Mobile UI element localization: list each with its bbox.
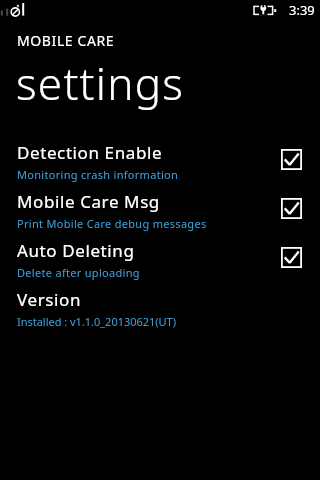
staticText: Auto Deleting	[17, 239, 135, 262]
staticText: Delete after uploading	[17, 265, 140, 280]
staticText: MOBILE CARE	[17, 31, 115, 50]
button[interactable]: Auto Deleting checkbox	[281, 247, 302, 268]
staticText: Version	[17, 288, 81, 311]
button[interactable]: Detection Enable	[0, 141, 320, 190]
button[interactable]: Detection Enable checkbox	[281, 149, 302, 170]
staticText: Mobile Care Msg	[17, 190, 160, 213]
staticText: Monitoring crash information	[17, 167, 179, 182]
staticText: Detection Enable	[17, 141, 163, 164]
button[interactable]: Mobile Care Msg checkbox	[281, 198, 302, 219]
button[interactable]: Mobile Care Msg	[0, 190, 320, 239]
staticText: settings	[16, 53, 185, 113]
other: No network signal	[0, 2, 30, 18]
staticText: Installed : v1.1.0_20130621(UT)	[17, 314, 176, 329]
button[interactable]: Auto Deleting	[0, 239, 320, 288]
staticText: 3:39	[289, 1, 315, 19]
staticText: Print Mobile Care debug messages	[17, 216, 207, 231]
other: Battery charging	[254, 0, 278, 20]
button[interactable]: Version	[0, 288, 320, 337]
